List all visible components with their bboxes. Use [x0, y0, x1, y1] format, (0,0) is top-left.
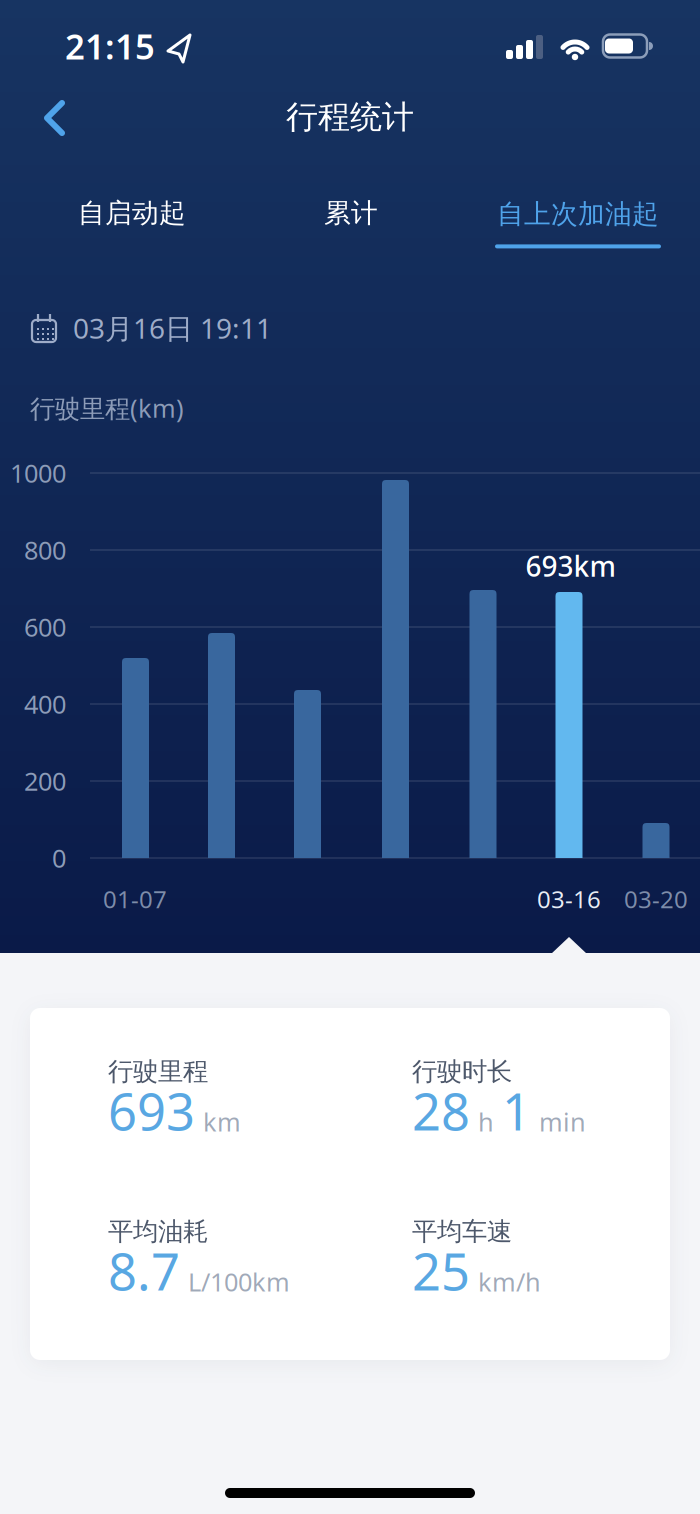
staticText: 行驶里程 [108, 1056, 208, 1087]
button[interactable]: 自上次加油起 [495, 198, 661, 248]
staticText: L/100km [188, 1265, 290, 1298]
staticText: 693km [525, 547, 616, 585]
staticText: 累计 [324, 197, 378, 229]
staticText: 8.7 [108, 1237, 180, 1304]
staticText: 1000 [10, 456, 66, 490]
staticText: 行驶时长 [412, 1056, 512, 1087]
staticText: 0 [52, 841, 66, 875]
staticText: km/h [478, 1265, 541, 1298]
staticText: 01-07 [103, 883, 167, 915]
staticText: 800 [24, 533, 66, 567]
staticText: 28 [412, 1077, 470, 1144]
staticText: h [478, 1105, 494, 1138]
staticText: 03-16 [537, 883, 601, 915]
staticText: km [203, 1105, 241, 1138]
button[interactable]: 自启动起 [39, 183, 225, 243]
staticText: 平均车速 [412, 1216, 512, 1247]
staticText: 03月16日 19:11 [73, 309, 272, 347]
staticText: 行程统计 [286, 97, 414, 137]
staticText: 行驶里程(km) [30, 391, 184, 425]
staticText: 自上次加油起 [497, 198, 659, 230]
staticText: 200 [24, 764, 66, 798]
staticText: 693 [108, 1077, 195, 1144]
button[interactable]: 03月16日 19:11 [30, 306, 290, 350]
button[interactable] [24, 96, 84, 140]
staticText: 平均油耗 [108, 1216, 208, 1247]
staticText: min [539, 1105, 586, 1138]
staticText: 25 [412, 1237, 470, 1304]
staticText: 1 [502, 1077, 531, 1144]
button[interactable]: 累计 [281, 183, 421, 243]
staticText: 400 [24, 687, 66, 721]
staticText: 600 [24, 610, 66, 644]
staticText: 21:15 [65, 23, 155, 69]
staticText: 03-20 [624, 883, 688, 915]
staticText: 自启动起 [78, 197, 186, 229]
